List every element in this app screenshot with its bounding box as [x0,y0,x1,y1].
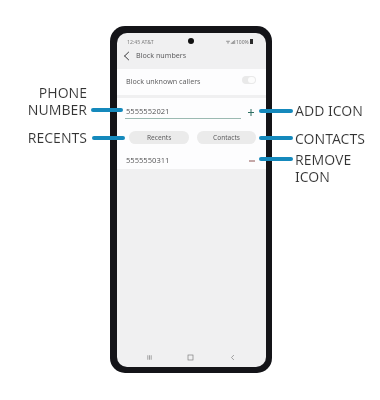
staticText: 5555550311 [126,155,170,165]
button[interactable]: Recent apps [142,350,156,364]
button[interactable]: Recents [129,131,189,144]
button[interactable]: Block unknown callers [117,69,266,92]
staticText: 5555552021 [126,106,170,116]
staticText: Block numbers [136,50,187,60]
staticText: PHONE NUMBER [0,83,87,119]
staticText: 12:45 AT&T [127,38,154,45]
staticText: Block unknown callers [126,76,201,86]
staticText: REMOVE ICON [295,150,380,186]
staticText: CONTACTS [295,129,380,148]
staticText: 100% [236,39,249,44]
staticText: Contacts [213,133,241,142]
button[interactable]: Remove number [245,154,258,167]
staticText: RECENTS [0,128,87,147]
button[interactable]: Add number [244,106,257,119]
staticText: ADD ICON [295,101,380,120]
button[interactable]: Home [183,350,197,364]
staticText: Recents [147,133,172,142]
button[interactable]: Back [225,350,239,364]
button[interactable]: Back [119,48,133,64]
button[interactable]: Contacts [197,131,256,144]
